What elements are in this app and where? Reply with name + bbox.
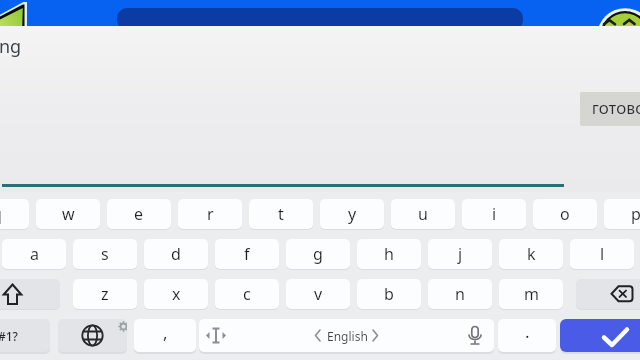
button[interactable]: x: [144, 279, 208, 309]
button[interactable]: n: [428, 279, 492, 309]
staticText: f: [244, 243, 250, 265]
button[interactable]: t: [249, 199, 313, 229]
button[interactable]: ГОТОВО: [580, 92, 640, 126]
button[interactable]: #1?: [0, 319, 50, 352]
button[interactable]: j: [428, 239, 492, 269]
staticText: k: [527, 243, 536, 265]
staticText: r: [207, 203, 214, 225]
staticText: t: [278, 203, 284, 225]
staticText: x: [172, 283, 181, 305]
button[interactable]: b: [357, 279, 421, 309]
button[interactable]: a: [2, 239, 66, 269]
button[interactable]: p: [604, 199, 640, 229]
button[interactable]: ,: [134, 319, 196, 352]
staticText: v: [314, 283, 323, 305]
staticText: w: [62, 203, 75, 225]
button[interactable]: q: [0, 199, 29, 229]
staticText: z: [101, 283, 109, 305]
staticText: p: [631, 203, 640, 225]
staticText: a: [30, 243, 39, 265]
staticText: s: [101, 243, 109, 265]
button[interactable]: w: [36, 199, 100, 229]
button[interactable]: [560, 319, 640, 352]
staticText: ng: [0, 34, 22, 59]
staticText: l: [600, 243, 605, 265]
staticText: English: [327, 328, 368, 344]
button[interactable]: f: [215, 239, 279, 269]
button[interactable]: v: [286, 279, 350, 309]
button[interactable]: o: [533, 199, 597, 229]
button[interactable]: z: [73, 279, 137, 309]
staticText: j: [458, 243, 463, 265]
staticText: d: [171, 243, 181, 265]
button[interactable]: u: [391, 199, 455, 229]
staticText: .: [525, 320, 530, 343]
staticText: q: [0, 203, 2, 225]
button[interactable]: English: [199, 319, 494, 352]
staticText: ГОТОВО: [592, 100, 640, 118]
staticText: u: [418, 203, 428, 225]
staticText: g: [313, 243, 323, 265]
staticText: #1?: [0, 328, 18, 344]
staticText: o: [560, 203, 570, 225]
button[interactable]: r: [178, 199, 242, 229]
staticText: n: [455, 283, 465, 305]
button[interactable]: [0, 279, 60, 309]
staticText: c: [243, 283, 251, 305]
button[interactable]: y: [320, 199, 384, 229]
staticText: e: [134, 203, 144, 225]
button[interactable]: i: [462, 199, 526, 229]
button[interactable]: k: [499, 239, 563, 269]
staticText: y: [348, 203, 357, 225]
button[interactable]: s: [73, 239, 137, 269]
button[interactable]: l: [570, 239, 634, 269]
button[interactable]: h: [357, 239, 421, 269]
staticText: h: [384, 243, 394, 265]
button[interactable]: m: [499, 279, 563, 309]
button[interactable]: d: [144, 239, 208, 269]
staticText: ,: [163, 321, 168, 344]
button[interactable]: [58, 319, 127, 352]
button[interactable]: e: [107, 199, 171, 229]
button[interactable]: g: [286, 239, 350, 269]
button[interactable]: [576, 279, 640, 309]
button[interactable]: c: [215, 279, 279, 309]
staticText: m: [524, 283, 539, 305]
button[interactable]: .: [498, 319, 556, 352]
staticText: i: [492, 203, 497, 225]
staticText: b: [384, 283, 394, 305]
